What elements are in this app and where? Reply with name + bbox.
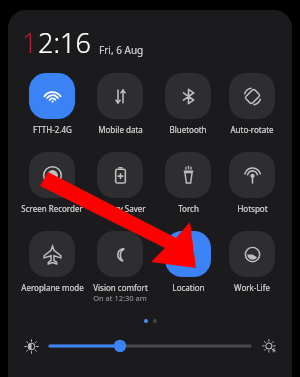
staticText: FTTH-2.4G [33, 124, 72, 135]
staticText: On at 12:30 am [93, 293, 147, 303]
button[interactable]: Work-Life Balance [222, 231, 282, 293]
button[interactable]: Aeroplane mode [18, 231, 86, 293]
staticText: Screen Recorder [21, 203, 83, 214]
button[interactable]: Brightness slider [50, 337, 250, 355]
staticText: Vision comfort [93, 282, 148, 293]
button[interactable]: Hotspot [222, 152, 282, 214]
staticText: 1 [22, 24, 38, 61]
button[interactable]: Auto-rotate [222, 73, 282, 135]
button[interactable]: FTTH-2.4G [18, 73, 86, 135]
staticText: 2:16 [38, 24, 91, 61]
button[interactable]: Location [154, 231, 222, 293]
button[interactable]: Auto brightness [258, 335, 280, 357]
button[interactable]: Screen Recorder [18, 152, 86, 214]
staticText: Work-Life Balance [222, 282, 282, 293]
button[interactable]: Vision comfort [86, 231, 154, 303]
staticText: Auto-rotate [230, 124, 274, 135]
staticText: Location [172, 282, 205, 293]
button[interactable]: Battery Saver [86, 152, 154, 214]
staticText: Aeroplane mode [21, 282, 84, 293]
staticText: Battery Saver [95, 203, 146, 214]
staticText: Bluetooth [169, 124, 207, 135]
staticText: Torch [178, 203, 199, 214]
button[interactable]: Mobile data [86, 73, 154, 135]
staticText: Mobile data [98, 124, 143, 135]
staticText: Fri, 6 Aug [99, 43, 144, 57]
button[interactable]: Minimum brightness [20, 335, 42, 357]
staticText: Hotspot [237, 203, 268, 214]
button[interactable]: Bluetooth [154, 73, 222, 135]
button[interactable]: Torch [154, 152, 222, 214]
